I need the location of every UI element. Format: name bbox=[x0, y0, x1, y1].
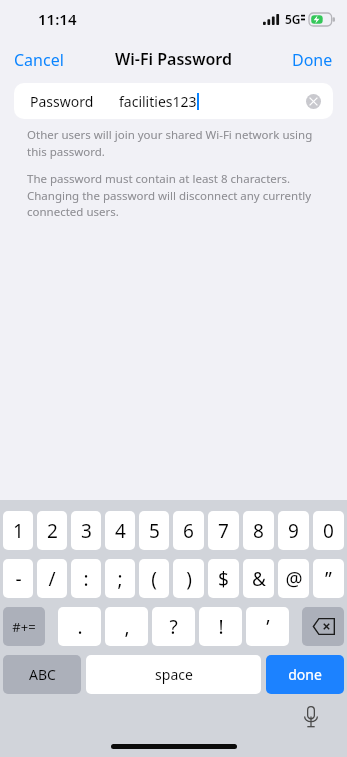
button[interactable]: - bbox=[3, 559, 33, 598]
staticText: 6 bbox=[183, 518, 194, 544]
button[interactable]: . bbox=[58, 607, 101, 646]
staticText: & bbox=[252, 566, 266, 592]
button[interactable]: ( bbox=[139, 559, 169, 598]
staticText: ” bbox=[325, 566, 332, 592]
staticText: Cancel bbox=[14, 49, 64, 69]
staticText: - bbox=[15, 566, 22, 592]
button[interactable]: ” bbox=[313, 559, 344, 598]
button[interactable]: & bbox=[243, 559, 274, 598]
button[interactable]: Password bbox=[14, 83, 333, 119]
button[interactable]: ! bbox=[199, 607, 242, 646]
button[interactable]: Done bbox=[280, 44, 347, 74]
button[interactable]: 7 bbox=[208, 511, 239, 550]
staticText: ( bbox=[151, 566, 157, 592]
button[interactable]: Dictation bbox=[295, 701, 327, 733]
staticText: / bbox=[48, 566, 56, 592]
staticText: 5 bbox=[149, 518, 160, 544]
button[interactable]: 0 bbox=[313, 511, 344, 550]
button[interactable]: ) bbox=[173, 559, 204, 598]
staticText: , bbox=[124, 614, 130, 640]
staticText: 3 bbox=[81, 518, 92, 544]
staticText: 5G bbox=[285, 11, 301, 27]
button[interactable]: #+= bbox=[3, 607, 45, 646]
button[interactable]: 4 bbox=[105, 511, 135, 550]
button[interactable]: space bbox=[86, 655, 261, 694]
button[interactable]: Delete bbox=[302, 607, 344, 646]
staticText: #+= bbox=[12, 618, 36, 636]
button[interactable]: 1 bbox=[3, 511, 33, 550]
staticText: The password must contain at least 8 cha… bbox=[27, 171, 320, 219]
button[interactable]: / bbox=[37, 559, 67, 598]
button[interactable]: 6 bbox=[173, 511, 204, 550]
button[interactable]: ’ bbox=[246, 607, 289, 646]
staticText: 0 bbox=[323, 518, 334, 544]
staticText: Password bbox=[30, 92, 94, 111]
staticText: Other users will join your shared Wi-Fi … bbox=[27, 127, 320, 159]
staticText: 1 bbox=[13, 518, 24, 544]
staticText: ) bbox=[186, 566, 192, 592]
button[interactable]: Cancel bbox=[0, 44, 76, 74]
button[interactable]: @ bbox=[278, 559, 309, 598]
staticText: ABC bbox=[29, 665, 56, 684]
button[interactable]: ABC bbox=[3, 655, 81, 694]
staticText: ; bbox=[117, 566, 123, 592]
staticText: 9 bbox=[288, 518, 299, 544]
button[interactable]: : bbox=[71, 559, 101, 598]
staticText: 2 bbox=[47, 518, 58, 544]
button[interactable]: 9 bbox=[278, 511, 309, 550]
staticText: @ bbox=[285, 566, 303, 592]
staticText: : bbox=[83, 566, 89, 592]
staticText: 7 bbox=[218, 518, 229, 544]
staticText: $ bbox=[218, 566, 229, 592]
staticText: 8 bbox=[253, 518, 264, 544]
staticText: Done bbox=[292, 49, 333, 69]
staticText: ? bbox=[169, 614, 178, 640]
staticText: 11:14 bbox=[38, 9, 77, 29]
staticText: ! bbox=[218, 614, 224, 640]
staticText: ’ bbox=[266, 614, 270, 640]
button[interactable]: ; bbox=[105, 559, 135, 598]
button[interactable]: $ bbox=[208, 559, 239, 598]
staticText: done bbox=[288, 665, 322, 684]
button[interactable]: 8 bbox=[243, 511, 274, 550]
button[interactable]: 2 bbox=[37, 511, 67, 550]
staticText: space bbox=[155, 665, 193, 684]
button[interactable]: 3 bbox=[71, 511, 101, 550]
button[interactable]: 5 bbox=[139, 511, 169, 550]
staticText: Wi-Fi Password bbox=[115, 48, 232, 70]
staticText: 4 bbox=[115, 518, 126, 544]
staticText: . bbox=[77, 614, 83, 640]
button[interactable]: done bbox=[266, 655, 344, 694]
button[interactable]: , bbox=[105, 607, 148, 646]
button[interactable]: ? bbox=[152, 607, 195, 646]
button[interactable]: Clear text bbox=[299, 87, 327, 115]
staticText: facilities123 bbox=[119, 92, 197, 111]
